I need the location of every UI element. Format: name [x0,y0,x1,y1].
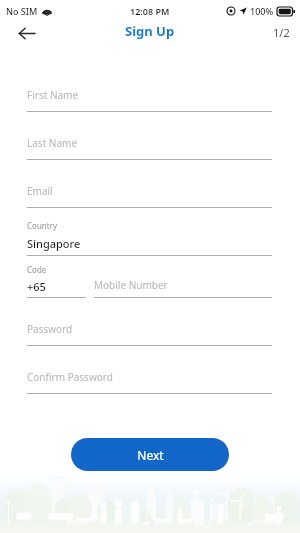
staticText: Code [27,264,47,275]
staticText: First Name [27,88,79,102]
staticText: Mobile Number [94,278,168,292]
button[interactable]: Email [27,176,272,208]
staticText: Confirm Password [27,370,113,384]
staticText: 1/2 [273,25,290,40]
staticText: Sign Up [125,22,175,40]
staticText: Password [27,322,73,336]
staticText: 12:08 PM [130,5,170,17]
button[interactable]: Last Name [27,128,272,160]
staticText: +65 [27,279,46,294]
button[interactable]: Mobile Number [94,264,272,298]
button[interactable]: First Name [27,80,272,112]
staticText: Last Name [27,136,78,150]
staticText: Singapore [27,236,81,251]
staticText: No SIM [6,5,38,17]
button[interactable]: Back [10,22,42,44]
staticText: Next [137,447,164,463]
staticText: Country [27,220,58,231]
button[interactable]: Next [71,438,229,471]
button[interactable]: Confirm Password [27,362,272,394]
button[interactable]: Country [27,218,272,256]
button[interactable]: Password [27,314,272,346]
staticText: 100% [250,5,274,17]
button[interactable]: Code [27,264,86,298]
staticText: Email [27,184,53,198]
